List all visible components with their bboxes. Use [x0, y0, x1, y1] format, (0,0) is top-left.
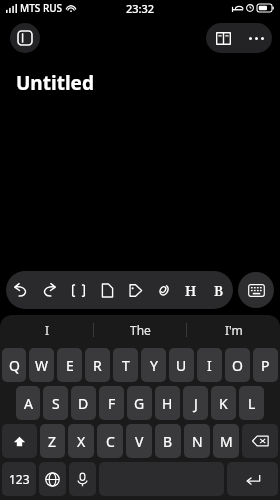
button[interactable]: Reading mode — [206, 23, 240, 53]
staticText: H — [185, 281, 197, 300]
button[interactable]: undo — [6, 271, 35, 309]
staticText: I — [207, 356, 212, 375]
button[interactable]: 123 — [2, 462, 36, 496]
button[interactable]: clip — [149, 271, 177, 309]
button[interactable]: brackets — [64, 271, 93, 309]
staticText: M — [220, 432, 233, 451]
staticText: U — [176, 356, 187, 375]
button[interactable]: X — [68, 424, 94, 458]
button[interactable]: S — [43, 386, 68, 420]
staticText: Z — [48, 432, 57, 451]
button[interactable]: R — [85, 348, 110, 382]
staticText: V — [135, 432, 144, 451]
staticText: L — [248, 394, 256, 413]
staticText: A — [24, 394, 33, 413]
staticText: I — [45, 322, 50, 338]
button[interactable]: tag — [121, 271, 149, 309]
staticText: Y — [150, 356, 158, 375]
staticText: W — [35, 356, 49, 375]
button[interactable]: Sidebar — [10, 23, 40, 53]
button[interactable]: Backspace — [242, 424, 278, 458]
button[interactable]: C — [97, 424, 123, 458]
button[interactable]: L — [239, 386, 264, 420]
staticText: K — [219, 394, 228, 413]
button[interactable]: redo — [35, 271, 64, 309]
staticText: T — [122, 356, 130, 375]
staticText: P — [261, 356, 270, 375]
button[interactable]: N — [184, 424, 210, 458]
staticText: X — [77, 432, 86, 451]
staticText: The — [130, 322, 151, 338]
button[interactable]: I'm — [187, 315, 280, 345]
button[interactable]: Change language — [39, 462, 66, 496]
button[interactable]: F — [99, 386, 124, 420]
button[interactable]: K — [211, 386, 236, 420]
staticText: 123 — [9, 471, 30, 487]
button[interactable]: B — [155, 424, 181, 458]
staticText: I'm — [225, 322, 243, 338]
button[interactable]: H — [155, 386, 180, 420]
staticText: 23:32 — [126, 1, 155, 16]
button[interactable]: U — [169, 348, 194, 382]
button[interactable]: G — [127, 386, 152, 420]
staticText: MTS RUS — [20, 1, 63, 15]
button[interactable]: W — [29, 348, 54, 382]
staticText: B — [214, 281, 224, 300]
button[interactable]: Hide keyboard — [238, 272, 274, 308]
button[interactable]: The — [94, 315, 187, 345]
staticText: F — [108, 394, 116, 413]
button[interactable]: M — [213, 424, 239, 458]
button[interactable]: E — [57, 348, 82, 382]
button[interactable]: doc — [93, 271, 121, 309]
button[interactable]: Enter — [227, 462, 278, 496]
button[interactable]: V — [126, 424, 152, 458]
button[interactable]: Z — [40, 424, 65, 458]
button[interactable]: P — [253, 348, 278, 382]
staticText: H — [162, 394, 173, 413]
button[interactable]: D — [71, 386, 96, 420]
staticText: D — [78, 394, 89, 413]
button[interactable]: B — [205, 271, 233, 309]
staticText: E — [66, 356, 74, 375]
staticText: Untitled — [16, 70, 94, 96]
button[interactable]: I — [0, 315, 94, 345]
staticText: R — [93, 356, 102, 375]
button[interactable]: I — [197, 348, 222, 382]
button[interactable]: Shift — [2, 424, 37, 458]
staticText: G — [134, 394, 145, 413]
button[interactable]: Q — [2, 348, 26, 382]
staticText: Q — [9, 356, 20, 375]
button[interactable]: Voice input — [69, 462, 96, 496]
staticText: N — [192, 432, 203, 451]
staticText: C — [106, 432, 115, 451]
button[interactable]: More options — [240, 23, 272, 53]
button[interactable]: H — [177, 271, 205, 309]
staticText: O — [232, 356, 243, 375]
staticText: S — [52, 394, 60, 413]
button[interactable]: A — [16, 386, 40, 420]
button[interactable]: Y — [141, 348, 166, 382]
button[interactable]: J — [183, 386, 208, 420]
staticText: B — [163, 432, 173, 451]
staticText: J — [194, 394, 198, 413]
button[interactable]: T — [113, 348, 138, 382]
button[interactable]: O — [225, 348, 250, 382]
